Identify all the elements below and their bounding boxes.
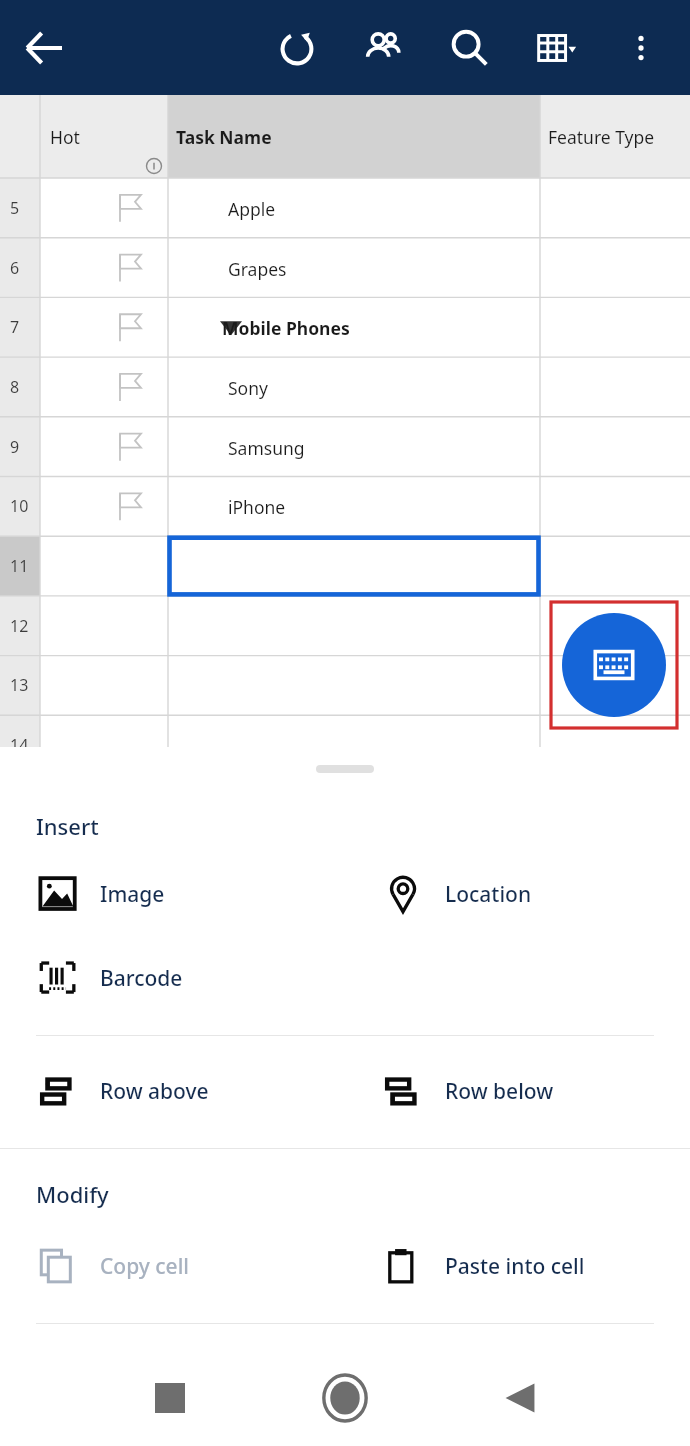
staticText: 14 — [10, 734, 29, 756]
staticText: Grapes — [228, 257, 287, 281]
button[interactable]: Location — [345, 863, 690, 925]
staticText: Row below — [445, 1077, 554, 1106]
staticText: Indent row — [445, 1363, 556, 1392]
staticText: Outdent row — [100, 1363, 228, 1392]
staticText: Row above — [100, 1077, 209, 1106]
button[interactable]: Image — [0, 863, 345, 925]
staticText: 8 — [10, 376, 20, 398]
staticText: Hot — [50, 125, 80, 149]
button[interactable]: Barcode — [0, 947, 345, 1009]
button[interactable]: Show keyboard — [562, 613, 666, 717]
button[interactable]: Indent row — [345, 1346, 690, 1408]
staticText: Insert — [36, 811, 99, 841]
staticText: 5 — [10, 197, 20, 219]
button[interactable]: Copy cell — [0, 1235, 345, 1297]
button[interactable]: View options — [512, 0, 598, 95]
staticText: Barcode — [100, 964, 183, 993]
staticText: Task Name — [176, 125, 272, 149]
button[interactable]: Outdent row — [0, 1346, 345, 1408]
staticText: 6 — [10, 257, 20, 279]
staticText: Sony — [228, 376, 268, 400]
staticText: Mobile Phones — [222, 316, 350, 340]
button[interactable]: Paste into cell — [345, 1235, 690, 1297]
staticText: 10 — [10, 495, 29, 517]
staticText: Feature Type — [548, 125, 655, 149]
button[interactable]: Row below — [345, 1060, 690, 1122]
button[interactable]: Row above — [0, 1060, 345, 1122]
button[interactable]: Collaborators — [340, 0, 426, 95]
staticText: 9 — [10, 436, 20, 458]
button[interactable]: Search — [426, 0, 512, 95]
button[interactable]: More options — [598, 0, 684, 95]
staticText: Image — [100, 880, 165, 909]
button[interactable]: Home — [315, 1368, 375, 1428]
staticText: Modify — [36, 1179, 109, 1209]
button[interactable]: Refresh — [254, 0, 340, 95]
button[interactable]: Back — [490, 1368, 550, 1428]
staticText: 13 — [10, 674, 29, 696]
staticText: Samsung — [228, 436, 305, 460]
button[interactable]: Back — [14, 18, 74, 78]
staticText: Copy cell — [100, 1252, 190, 1281]
button[interactable]: Recents — [140, 1368, 200, 1428]
staticText: 12 — [10, 615, 29, 637]
staticText: 11 — [10, 555, 29, 577]
staticText: Paste into cell — [445, 1252, 585, 1281]
staticText: 7 — [10, 316, 20, 338]
staticText: iPhone — [228, 495, 286, 519]
staticText: Location — [445, 880, 532, 909]
staticText: Apple — [228, 197, 276, 221]
